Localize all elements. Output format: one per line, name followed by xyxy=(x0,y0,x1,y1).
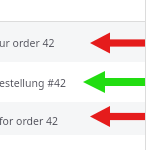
other: Increase Bestellung 42 xyxy=(0,62,150,102)
staticText: estellung #42 xyxy=(0,76,67,90)
staticText: ur order 42 xyxy=(0,36,55,50)
staticText: for order 42 xyxy=(0,114,58,128)
other: Decrease order 42 xyxy=(0,22,150,62)
other: Decrease for order 42 xyxy=(0,102,150,135)
button[interactable]: estellung #42 xyxy=(0,62,150,102)
button[interactable]: ur order 42 xyxy=(0,22,150,62)
button[interactable]: for order 42 xyxy=(0,102,150,135)
